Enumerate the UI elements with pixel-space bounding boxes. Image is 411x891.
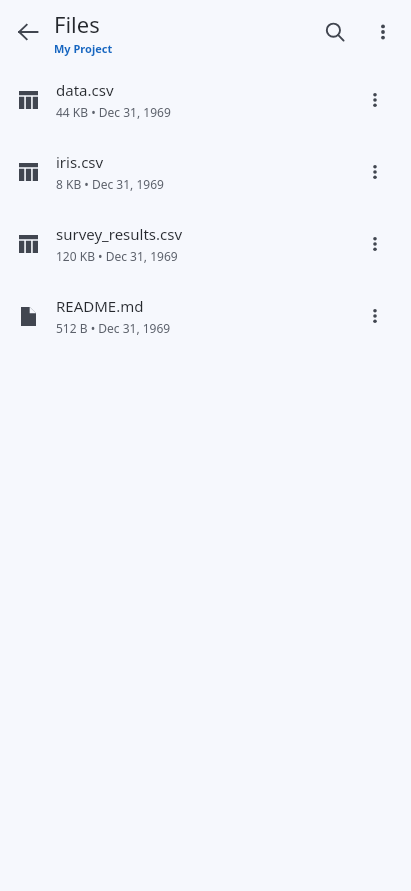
button[interactable]: Back [4,8,52,56]
button[interactable]: survey_results.csv [0,208,411,280]
staticText: 8 KB • Dec 31, 1969 [56,176,164,192]
button[interactable]: More options for README.md [355,296,395,336]
staticText: iris.csv [56,152,104,172]
staticText: 44 KB • Dec 31, 1969 [56,104,171,120]
button[interactable]: More options for data.csv [355,80,395,120]
button[interactable]: More options for iris.csv [355,152,395,192]
button[interactable]: README.md [0,280,411,352]
staticText: Files [54,9,100,39]
button[interactable]: More options [359,8,407,56]
staticText: survey_results.csv [56,224,183,244]
staticText: 512 B • Dec 31, 1969 [56,320,171,336]
button[interactable]: iris.csv [0,136,411,208]
button[interactable]: Search [311,8,359,56]
staticText: README.md [56,296,144,316]
staticText: My Project [54,41,113,56]
button[interactable]: More options for survey_results.csv [355,224,395,264]
button[interactable]: data.csv [0,64,411,136]
staticText: data.csv [56,80,114,100]
staticText: 120 KB • Dec 31, 1969 [56,248,178,264]
